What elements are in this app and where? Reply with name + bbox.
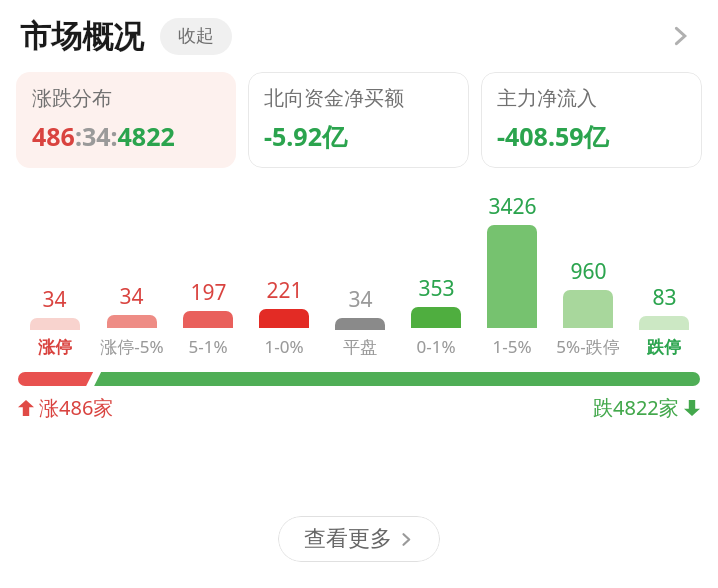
- button[interactable]: 收起: [160, 18, 232, 55]
- staticText: 0-1%: [416, 335, 456, 358]
- button[interactable]: More: [658, 14, 702, 58]
- button[interactable]: 查看更多: [278, 516, 440, 562]
- staticText: 353: [418, 274, 455, 303]
- staticText: 221: [266, 276, 303, 305]
- staticText: 涨486家: [39, 394, 114, 421]
- staticText: 查看更多: [304, 525, 392, 553]
- staticText: 涨停: [38, 337, 72, 358]
- staticText: 跌停: [647, 337, 681, 358]
- staticText: 涨跌分布: [32, 86, 112, 111]
- staticText: 主力净流入: [497, 86, 597, 111]
- staticText: 83: [652, 283, 677, 312]
- button[interactable]: 涨跌分布: [16, 72, 236, 168]
- button[interactable]: 主力净流入: [481, 72, 702, 168]
- staticText: 486:34:4822: [32, 119, 175, 153]
- staticText: 960: [570, 257, 607, 286]
- staticText: 平盘: [343, 337, 377, 358]
- staticText: 1-5%: [492, 335, 532, 358]
- staticText: 34: [42, 285, 67, 314]
- staticText: 3426: [488, 192, 537, 221]
- staticText: 5-1%: [188, 335, 228, 358]
- staticText: 34: [348, 285, 373, 314]
- staticText: 市场概况: [20, 17, 144, 56]
- staticText: 跌4822家: [593, 394, 679, 421]
- staticText: 1-0%: [264, 335, 304, 358]
- staticText: -5.92亿: [264, 119, 347, 153]
- staticText: 197: [190, 278, 227, 307]
- staticText: 北向资金净买额: [264, 86, 404, 111]
- staticText: 34: [119, 282, 144, 311]
- staticText: 5%-跌停: [556, 335, 620, 358]
- button[interactable]: 北向资金净买额: [248, 72, 469, 168]
- staticText: 收起: [178, 25, 214, 48]
- staticText: -408.59亿: [497, 119, 609, 153]
- staticText: 涨停-5%: [100, 335, 164, 358]
